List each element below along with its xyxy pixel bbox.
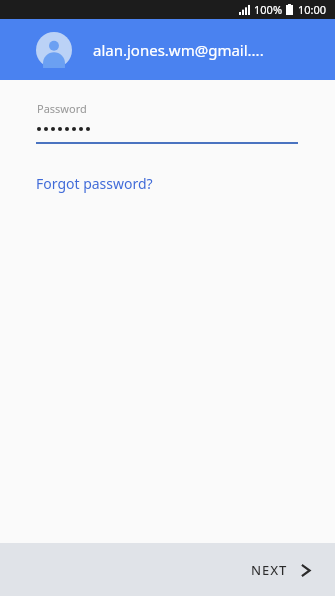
staticText: NEXT (251, 561, 288, 579)
staticText: 10:00 (298, 2, 327, 17)
button[interactable]: NEXT (241, 553, 321, 587)
button[interactable]: Forgot password? (30, 170, 159, 197)
staticText: Password (37, 101, 87, 116)
staticText: 100% (254, 2, 283, 17)
button[interactable]: Account avatar (0, 19, 335, 80)
other: Account avatar (36, 32, 72, 68)
staticText: alan.jones.wm@gmail.... (93, 40, 264, 60)
staticText: Forgot password? (36, 174, 153, 193)
